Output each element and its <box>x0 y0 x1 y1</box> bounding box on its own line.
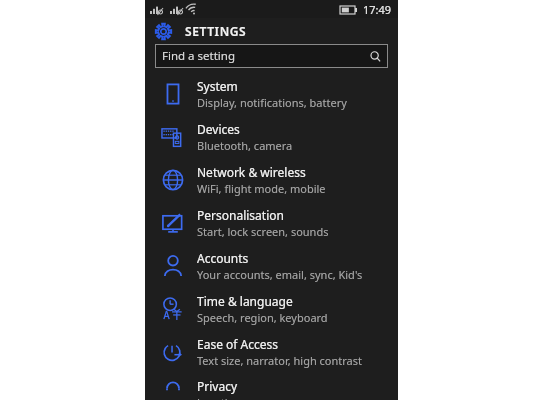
button[interactable]: Time & language <box>145 292 398 326</box>
button[interactable]: System <box>145 77 398 111</box>
staticText: Display, notifications, battery <box>197 95 347 110</box>
staticText: Personalisation <box>197 207 284 223</box>
staticText: Bluetooth, camera <box>197 138 293 153</box>
staticText: Time & language <box>197 293 293 309</box>
button[interactable]: Network & wireless <box>145 163 398 197</box>
staticText: Start, lock screen, sounds <box>197 224 329 239</box>
staticText: Your accounts, email, sync, Kid's Corner <box>197 267 392 282</box>
staticText: Network & wireless <box>197 164 306 180</box>
staticText: Accounts <box>197 250 249 266</box>
button[interactable]: Devices <box>145 120 398 154</box>
staticText: Devices <box>197 121 240 137</box>
staticText: System <box>197 78 238 94</box>
staticText: WiFi, flight mode, mobile <box>197 181 326 196</box>
staticText: Find a setting <box>162 48 235 64</box>
other: Settings <box>155 23 172 40</box>
button[interactable]: Find a setting <box>155 44 388 68</box>
button[interactable]: Accounts <box>145 249 398 283</box>
staticText: SETTINGS <box>185 23 247 39</box>
staticText: Privacy <box>197 378 238 394</box>
staticText: Location, camera <box>197 395 286 400</box>
button[interactable]: Ease of Access <box>145 335 398 369</box>
staticText: Ease of Access <box>197 336 279 352</box>
staticText: Text size, narrator, high contrast <box>197 353 362 368</box>
staticText: 17:49 <box>363 2 392 17</box>
button[interactable]: Settings <box>145 18 398 44</box>
button[interactable]: Privacy <box>145 378 398 400</box>
staticText: Speech, region, keyboard <box>197 310 328 325</box>
button[interactable]: Personalisation <box>145 206 398 240</box>
